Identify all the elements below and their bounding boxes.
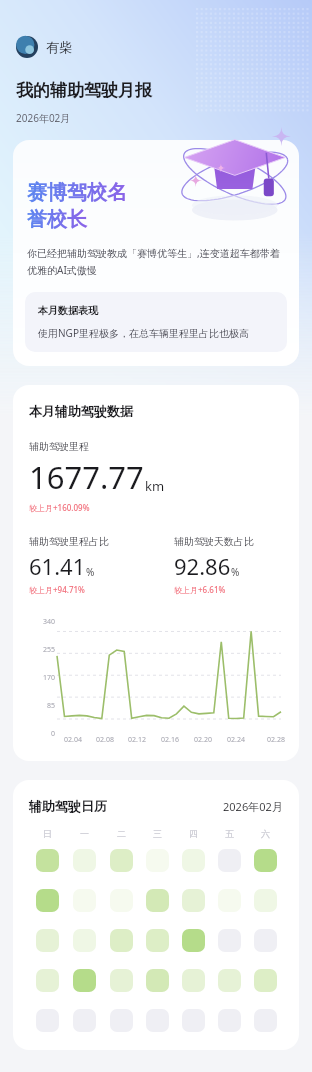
button[interactable]: 辅助驾驶日历: [13, 780, 299, 1050]
button[interactable]: [146, 889, 169, 912]
button[interactable]: [146, 849, 169, 872]
button[interactable]: [218, 849, 241, 872]
staticText: 辅助驾驶里程: [29, 440, 89, 453]
button[interactable]: [36, 849, 59, 872]
button[interactable]: 辅助驾驶里程占比: [29, 535, 174, 595]
button[interactable]: [36, 929, 59, 952]
staticText: 四: [189, 828, 198, 839]
button[interactable]: [254, 889, 277, 912]
staticText: 日: [43, 828, 52, 839]
staticText: 170: [42, 673, 55, 683]
staticText: 255: [42, 645, 55, 655]
button[interactable]: [36, 969, 59, 992]
button[interactable]: [110, 849, 133, 872]
staticText: 誉校长: [27, 207, 87, 232]
staticText: 02.16: [161, 735, 179, 745]
button[interactable]: [73, 929, 96, 952]
staticText: 较上月+94.71%: [29, 584, 85, 595]
staticText: 02.04: [64, 735, 82, 745]
staticText: 0: [50, 729, 55, 739]
button[interactable]: [182, 969, 205, 992]
button[interactable]: [218, 929, 241, 952]
button[interactable]: 本月辅助驾驶数据: [13, 385, 299, 761]
button[interactable]: [254, 849, 277, 872]
staticText: 一: [80, 828, 89, 839]
staticText: 五: [225, 828, 234, 839]
staticText: 三: [153, 828, 162, 839]
staticText: 92.86: [174, 551, 231, 581]
button[interactable]: [182, 889, 205, 912]
staticText: 赛博驾校名: [27, 180, 127, 205]
staticText: 你已经把辅助驾驶教成「赛博优等生」,连变道超车都带着优雅的AI式傲慢: [27, 246, 285, 277]
staticText: 02.20: [194, 735, 212, 745]
staticText: 辅助驾驶日历: [29, 798, 107, 814]
staticText: 02.24: [227, 735, 245, 745]
staticText: 使用NGP里程极多，在总车辆里程里占比也极高: [38, 326, 249, 340]
staticText: 六: [261, 828, 270, 839]
staticText: 较上月+6.61%: [174, 584, 226, 595]
staticText: 61.41: [29, 551, 86, 581]
button[interactable]: 辅助驾驶天数占比: [174, 535, 299, 595]
staticText: 我的辅助驾驶月报: [16, 80, 152, 101]
button[interactable]: [146, 969, 169, 992]
staticText: km: [145, 477, 165, 495]
staticText: 有柴: [46, 39, 72, 55]
staticText: 较上月+160.09%: [29, 502, 90, 513]
button[interactable]: [218, 889, 241, 912]
button[interactable]: [110, 889, 133, 912]
staticText: 02.28: [267, 735, 285, 745]
staticText: %: [86, 565, 95, 579]
button[interactable]: [146, 1009, 169, 1032]
button[interactable]: [182, 849, 205, 872]
button[interactable]: [73, 889, 96, 912]
button[interactable]: [254, 1009, 277, 1032]
staticText: 1677.77: [29, 456, 144, 498]
staticText: 2026年02月: [16, 111, 71, 125]
button[interactable]: [254, 929, 277, 952]
staticText: 辅助驾驶天数占比: [174, 535, 254, 548]
button[interactable]: 有柴: [16, 36, 72, 58]
button[interactable]: [110, 1009, 133, 1032]
staticText: 2026年02月: [223, 799, 283, 814]
other: 毕业帽插画: [168, 126, 294, 231]
button[interactable]: [110, 929, 133, 952]
button[interactable]: [182, 1009, 205, 1032]
staticText: 辅助驾驶里程占比: [29, 535, 109, 548]
staticText: 85: [46, 701, 55, 711]
button[interactable]: 本月数据表现: [38, 304, 274, 340]
staticText: 340: [42, 617, 55, 627]
staticText: 02.08: [96, 735, 114, 745]
staticText: 本月数据表现: [38, 304, 98, 317]
button[interactable]: [254, 969, 277, 992]
button[interactable]: 赛博驾校名: [13, 140, 299, 366]
button[interactable]: [36, 1009, 59, 1032]
button[interactable]: [36, 889, 59, 912]
button[interactable]: [73, 1009, 96, 1032]
button[interactable]: [110, 969, 133, 992]
button[interactable]: [218, 1009, 241, 1032]
staticText: 二: [117, 828, 126, 839]
button[interactable]: [182, 929, 205, 952]
button[interactable]: [146, 929, 169, 952]
button[interactable]: [73, 849, 96, 872]
staticText: %: [231, 565, 240, 579]
button[interactable]: [73, 969, 96, 992]
button[interactable]: [218, 969, 241, 992]
staticText: 02.12: [128, 735, 146, 745]
staticText: 本月辅助驾驶数据: [29, 403, 133, 419]
